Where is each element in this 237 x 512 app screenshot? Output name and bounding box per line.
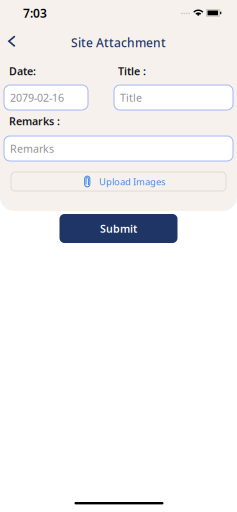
staticText: Date:	[9, 64, 36, 78]
staticText: Title :	[118, 64, 146, 78]
staticText: Submit	[100, 221, 137, 236]
staticText: Remarks	[10, 141, 54, 156]
button[interactable]: Title	[114, 85, 233, 110]
button[interactable]: Back	[0, 28, 26, 58]
button[interactable]: Upload Images	[11, 172, 226, 191]
staticText: Upload Images	[99, 175, 165, 188]
button[interactable]: 2079-02-16	[4, 85, 88, 110]
staticText: Title	[120, 90, 142, 105]
staticText: 2079-02-16	[10, 90, 64, 105]
staticText: Site Attachment	[71, 34, 166, 50]
button[interactable]: Remarks	[4, 136, 233, 161]
staticText: Remarks :	[9, 114, 60, 128]
button[interactable]: Submit	[59, 214, 177, 243]
staticText: 7:03	[23, 5, 47, 21]
